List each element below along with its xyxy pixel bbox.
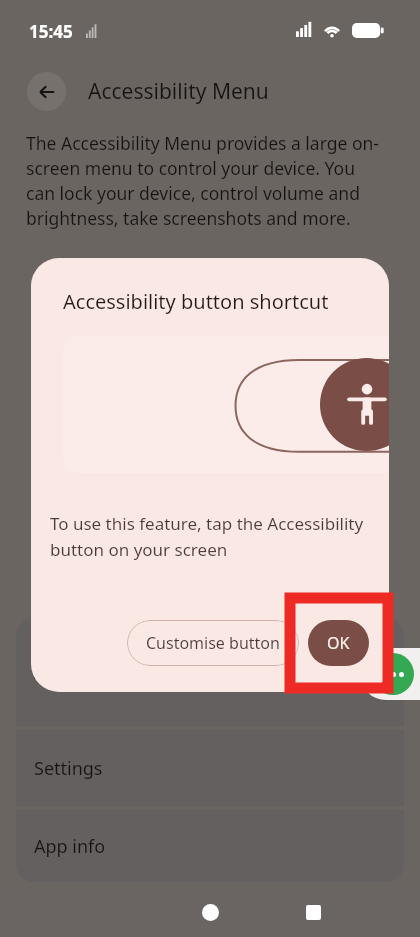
staticText: Accessibility button shortcut [63, 288, 329, 315]
button[interactable]: Back [27, 72, 66, 111]
staticText: Settings [34, 756, 103, 781]
staticText: Customise button [146, 632, 280, 654]
button[interactable]: Recents [285, 888, 341, 937]
staticText: The Accessibility Menu provides a large … [26, 131, 388, 230]
staticText: Accessibility button [34, 660, 198, 685]
button[interactable]: App info [16, 810, 404, 882]
staticText: App info [34, 834, 106, 859]
staticText: Accessibility Menu [88, 77, 269, 106]
button[interactable]: Settings [16, 730, 404, 806]
staticText: OK [327, 632, 350, 654]
button[interactable]: OK [308, 620, 369, 666]
button[interactable]: Customise button [127, 620, 299, 666]
button[interactable]: Accessibility button [16, 618, 404, 726]
button[interactable]: Home [182, 888, 238, 937]
staticText: 15:45 [29, 20, 73, 43]
staticText: To use this feature, tap the Accessibili… [50, 512, 372, 561]
button[interactable]: More options [372, 653, 414, 695]
